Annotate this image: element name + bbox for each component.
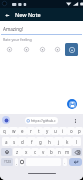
button[interactable]: Mood 1 bbox=[5, 45, 14, 54]
staticText: , bbox=[16, 160, 18, 165]
button[interactable]: v bbox=[39, 148, 47, 156]
button[interactable]: b bbox=[47, 148, 55, 156]
staticText: j bbox=[58, 139, 60, 145]
staticText: z bbox=[16, 149, 19, 155]
staticText: u bbox=[54, 128, 57, 134]
button[interactable]: w bbox=[9, 127, 18, 135]
button[interactable]: x bbox=[22, 148, 31, 156]
staticText: y bbox=[46, 128, 49, 134]
staticText: x bbox=[25, 149, 28, 155]
button[interactable]: m bbox=[63, 148, 71, 156]
button[interactable]: Mood 2 bbox=[22, 45, 31, 54]
button[interactable]: f bbox=[27, 137, 36, 146]
button[interactable]: More options bbox=[72, 117, 79, 124]
button[interactable]: k bbox=[63, 137, 72, 146]
staticText: a bbox=[5, 139, 8, 145]
button[interactable]: Save note bbox=[67, 99, 77, 109]
staticText: ?123 bbox=[4, 160, 11, 164]
staticText: e bbox=[21, 128, 24, 134]
button[interactable]: Assistant bbox=[2, 116, 10, 124]
button[interactable]: c bbox=[31, 148, 39, 156]
button[interactable]: s bbox=[10, 137, 18, 146]
button[interactable]: e bbox=[18, 127, 27, 135]
staticText: . bbox=[64, 160, 66, 165]
staticText: s bbox=[13, 139, 16, 145]
staticText: l bbox=[76, 139, 78, 145]
button[interactable]: u bbox=[51, 127, 59, 135]
button[interactable]: h bbox=[45, 137, 54, 146]
staticText: https://github.c bbox=[31, 118, 56, 123]
button[interactable]: . bbox=[63, 158, 67, 166]
staticText: r bbox=[30, 128, 32, 134]
button[interactable]: Mood 4 bbox=[53, 45, 62, 54]
button[interactable]: Mood 3 bbox=[38, 45, 47, 54]
staticText: w bbox=[12, 128, 16, 134]
staticText: g bbox=[39, 139, 42, 145]
button[interactable]: a bbox=[2, 137, 10, 146]
staticText: c bbox=[34, 149, 37, 155]
staticText: m bbox=[65, 149, 70, 155]
staticText: k bbox=[66, 139, 69, 145]
button[interactable]: Enter bbox=[69, 158, 82, 166]
staticText: v bbox=[42, 149, 45, 155]
button[interactable]: Backspace bbox=[72, 148, 82, 156]
button[interactable]: g bbox=[36, 137, 45, 146]
button[interactable]: d bbox=[18, 137, 27, 146]
staticText: q bbox=[3, 128, 6, 134]
staticText: h bbox=[48, 139, 51, 145]
button[interactable]: r bbox=[27, 127, 35, 135]
button[interactable]: q bbox=[0, 127, 9, 135]
button[interactable]: , bbox=[15, 158, 18, 166]
staticText: f bbox=[31, 139, 33, 145]
staticText: d bbox=[21, 139, 24, 145]
staticText: New Note bbox=[15, 11, 41, 18]
staticText: Amazing! bbox=[3, 26, 24, 32]
button[interactable]: Shift bbox=[1, 148, 12, 156]
button[interactable]: j bbox=[54, 137, 63, 146]
button[interactable]: Back bbox=[2, 10, 12, 20]
button[interactable]: https://github.c bbox=[25, 117, 58, 124]
button[interactable]: o bbox=[67, 127, 75, 135]
button[interactable]: l bbox=[72, 137, 81, 146]
staticText: p bbox=[78, 128, 81, 134]
staticText: i bbox=[62, 128, 64, 134]
staticText: b bbox=[50, 149, 53, 155]
button[interactable]: y bbox=[43, 127, 51, 135]
button[interactable]: Selected mood bbox=[65, 43, 78, 56]
staticText: o bbox=[70, 128, 73, 134]
button[interactable]: ?123 bbox=[1, 158, 13, 166]
button[interactable]: t bbox=[35, 127, 43, 135]
staticText: Rate your feeling bbox=[3, 37, 32, 42]
staticText: n bbox=[58, 149, 61, 155]
button[interactable]: Emoji bbox=[20, 158, 24, 166]
staticText: t bbox=[38, 128, 40, 134]
button[interactable]: p bbox=[75, 127, 83, 135]
button[interactable]: i bbox=[59, 127, 67, 135]
button[interactable]: z bbox=[13, 148, 22, 156]
button[interactable]: n bbox=[55, 148, 63, 156]
